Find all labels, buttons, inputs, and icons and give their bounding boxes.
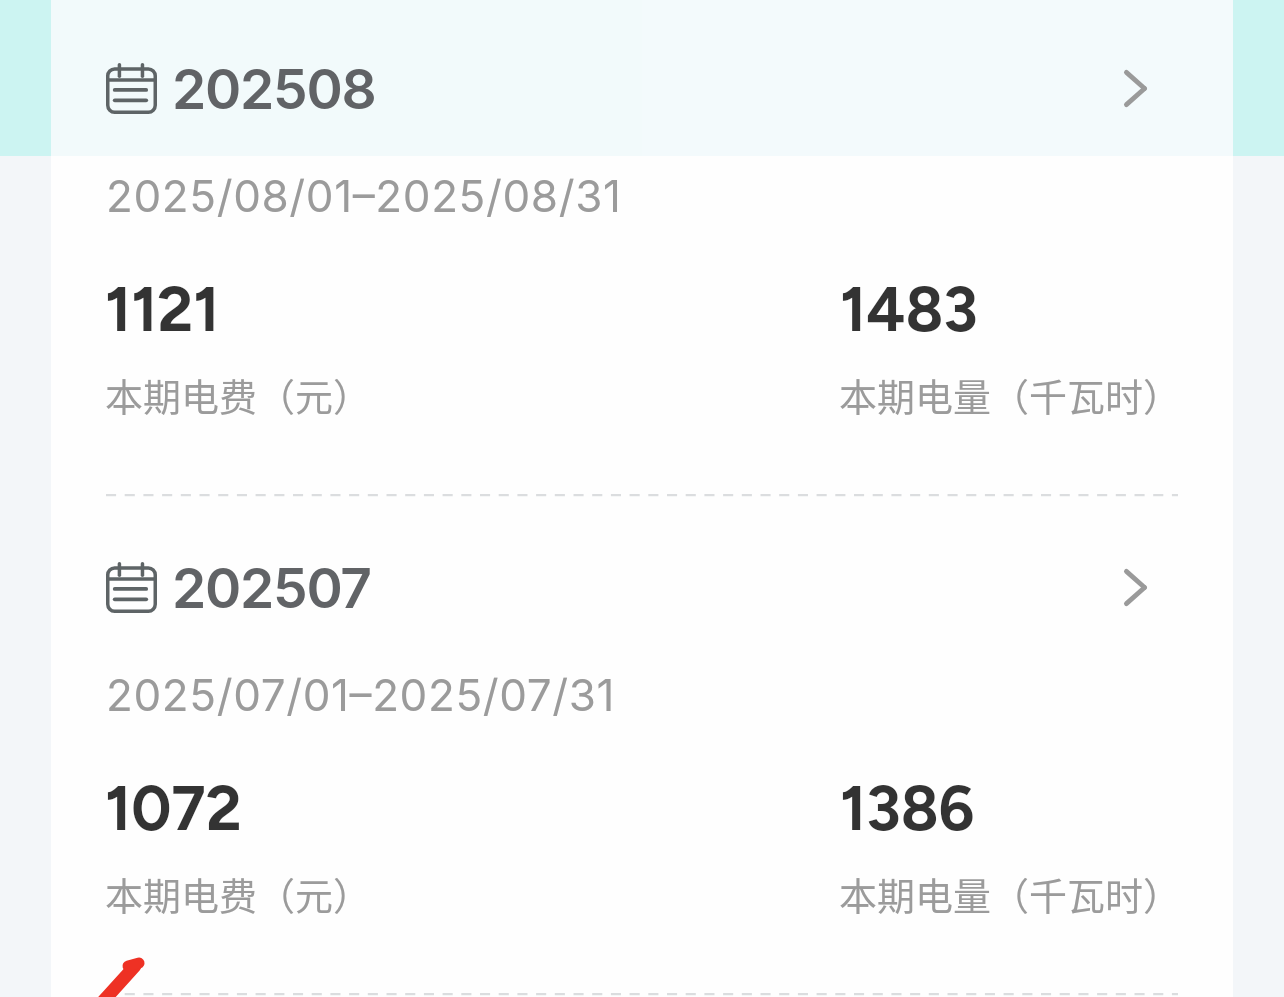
button[interactable]: Bill for 202507, 2025/07/01–2025/07/31 xyxy=(51,499,1233,997)
staticText: 1483 xyxy=(840,272,978,346)
staticText: 1121 xyxy=(105,272,220,346)
staticText: 本期电量（千瓦时） xyxy=(839,367,1182,422)
staticText: 2025/07/01–2025/07/31 xyxy=(106,668,616,721)
staticText: 202507 xyxy=(172,555,371,622)
staticText: 202508 xyxy=(172,56,376,123)
staticText: 1386 xyxy=(840,771,975,845)
staticText: 2025/08/01–2025/08/31 xyxy=(106,169,622,222)
button[interactable]: Bill for 202508, 2025/08/01–2025/08/31 xyxy=(51,0,1233,499)
button[interactable]: View details for 202508 xyxy=(1114,60,1164,110)
staticText: 本期电费（元） xyxy=(105,367,372,422)
staticText: 本期电量（千瓦时） xyxy=(839,866,1182,921)
staticText: 1072 xyxy=(105,771,242,845)
button[interactable]: View details for 202507 xyxy=(1114,559,1164,609)
staticText: 本期电费（元） xyxy=(105,866,372,921)
